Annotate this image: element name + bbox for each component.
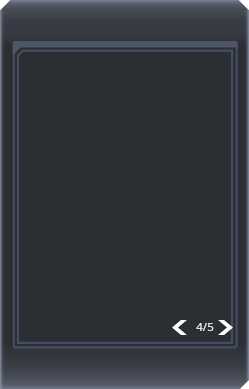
- button[interactable]: Previous page: [168, 316, 190, 339]
- staticText: 4/5: [196, 319, 214, 335]
- button[interactable]: Next page: [215, 316, 236, 339]
